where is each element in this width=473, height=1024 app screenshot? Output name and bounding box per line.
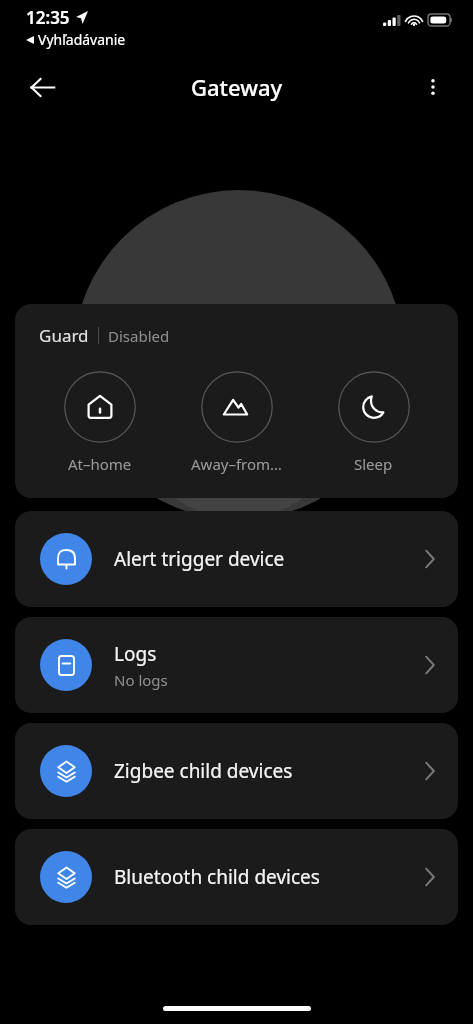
staticText: Guard	[39, 324, 89, 347]
staticText: Bluetooth child devices	[114, 864, 320, 890]
staticText: At–home	[68, 454, 132, 474]
staticText: Sleep	[354, 454, 393, 474]
button[interactable]: Bluetooth child devices	[15, 829, 458, 925]
button[interactable]: Logs	[15, 617, 458, 713]
staticText: Away–from…	[191, 454, 282, 474]
staticText: Gateway	[191, 72, 283, 102]
staticText: Logs	[114, 641, 157, 667]
button[interactable]: Zigbee child devices	[15, 723, 458, 819]
button[interactable]: Sleep	[311, 369, 436, 476]
button[interactable]: Away–from…	[174, 369, 299, 476]
staticText: Disabled	[108, 326, 170, 346]
staticText: Vyhľadávanie	[38, 30, 126, 49]
staticText: Alert trigger device	[114, 546, 285, 572]
button[interactable]: More options	[409, 63, 457, 111]
staticText: No logs	[114, 670, 168, 690]
button[interactable]: Back	[18, 63, 66, 111]
button[interactable]: At–home	[37, 369, 162, 476]
staticText: Zigbee child devices	[114, 758, 293, 784]
staticText: 12:35	[26, 6, 70, 29]
button[interactable]: Guard	[15, 304, 458, 498]
button[interactable]: Alert trigger device	[15, 511, 458, 607]
